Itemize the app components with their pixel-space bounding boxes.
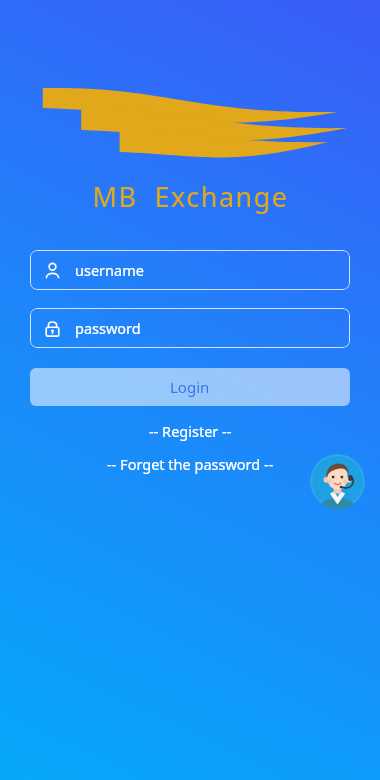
staticText: username — [75, 260, 144, 280]
button[interactable]: password — [30, 308, 350, 348]
button[interactable]: Login — [30, 368, 350, 406]
button[interactable]: username — [30, 250, 350, 290]
staticText: -- Register -- — [149, 421, 232, 441]
staticText: -- Forget the password -- — [107, 454, 274, 474]
staticText: Login — [170, 377, 210, 397]
button[interactable]: -- Forget the password -- — [97, 452, 284, 476]
button[interactable]: -- Register -- — [139, 419, 242, 443]
staticText: password — [75, 318, 141, 338]
staticText: MB Exchange — [92, 178, 289, 215]
button[interactable]: Customer support — [310, 454, 365, 509]
